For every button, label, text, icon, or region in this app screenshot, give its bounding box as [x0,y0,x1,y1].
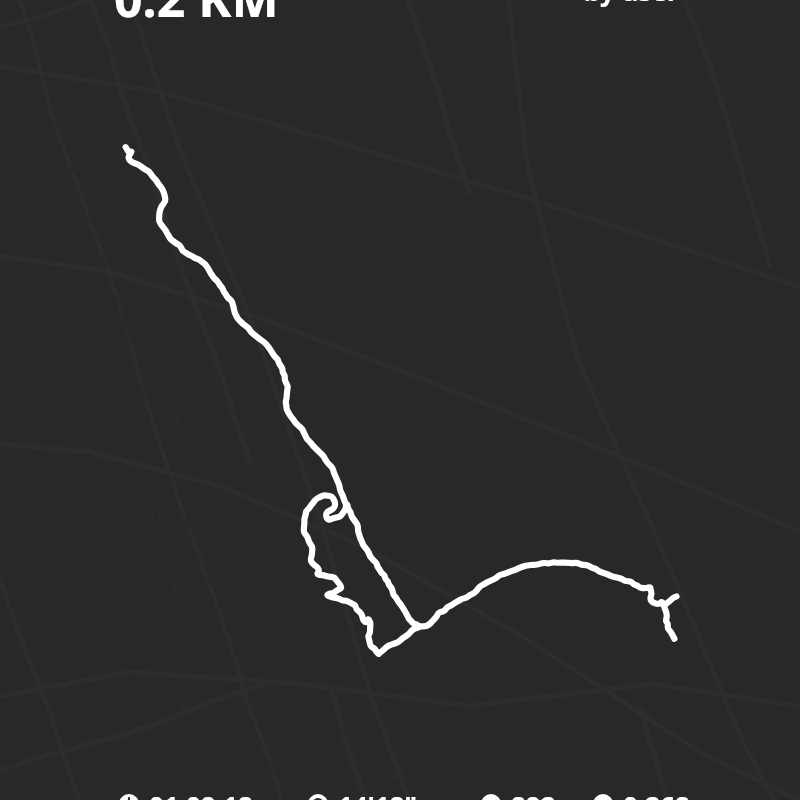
button[interactable]: by user [584,0,679,8]
staticText: by user [584,0,679,8]
button[interactable]: Average pace 14'18" per km [308,792,417,800]
button[interactable]: 0.2 KM [114,0,279,32]
button[interactable]: 892 calories [481,792,556,800]
staticText: 0.268 [623,788,690,800]
staticText: 892 [511,788,556,800]
staticText: 0.2 KM [114,0,279,32]
staticText: 14'18" [338,788,417,800]
button[interactable]: Elevation 0.268 [593,792,690,800]
staticText: 01:09:18 [149,788,253,800]
button[interactable]: Duration 01:09:18 [119,792,253,800]
